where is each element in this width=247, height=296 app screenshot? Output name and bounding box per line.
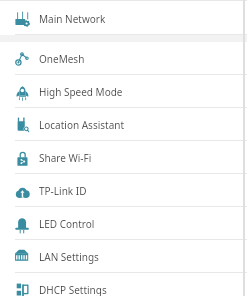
button[interactable]: Location Assistant <box>0 108 247 141</box>
staticText: OneMesh <box>39 52 85 66</box>
button[interactable]: DHCP Settings <box>0 273 247 296</box>
staticText: LED Control <box>39 217 95 231</box>
button[interactable]: Main Network <box>0 2 247 35</box>
staticText: TP-Link ID <box>39 184 87 198</box>
button[interactable]: LED Control <box>0 207 247 240</box>
staticText: Share Wi-Fi <box>39 151 92 165</box>
staticText: LAN Settings <box>39 250 99 264</box>
button[interactable]: LAN Settings <box>0 240 247 273</box>
button[interactable]: TP-Link ID <box>0 174 247 207</box>
staticText: High Speed Mode <box>39 85 123 99</box>
button[interactable]: Share Wi-Fi <box>0 141 247 174</box>
staticText: Location Assistant <box>39 118 125 132</box>
staticText: Main Network <box>39 12 106 26</box>
button[interactable]: High Speed Mode <box>0 75 247 108</box>
button[interactable]: OneMesh <box>0 42 247 75</box>
staticText: DHCP Settings <box>39 283 107 296</box>
